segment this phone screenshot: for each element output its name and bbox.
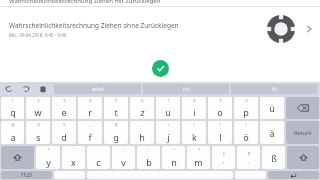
button[interactable]: ich bbox=[143, 84, 229, 94]
button[interactable]: ↵ bbox=[268, 171, 319, 179]
staticText: 8 bbox=[193, 98, 196, 103]
staticText: w bbox=[34, 106, 42, 118]
button[interactable]: what bbox=[54, 84, 141, 94]
staticText: + bbox=[167, 122, 170, 127]
staticText: m bbox=[194, 156, 203, 168]
button[interactable]: _ bbox=[78, 121, 102, 144]
staticText: e bbox=[61, 106, 67, 118]
staticText: Wahrscheinlichkeitsrechnung Ziehen ohne … bbox=[9, 21, 179, 30]
button[interactable]: . bbox=[235, 171, 266, 179]
button[interactable]: Undo bbox=[0, 82, 17, 96]
button[interactable]: 3 bbox=[52, 97, 76, 119]
staticText: z bbox=[140, 106, 145, 118]
button[interactable]: Open bbox=[298, 7, 320, 51]
staticText: th bbox=[272, 86, 277, 93]
button[interactable]: 0 bbox=[234, 97, 258, 119]
staticText: l bbox=[219, 131, 222, 143]
button[interactable]: ä bbox=[260, 121, 284, 144]
staticText: n bbox=[171, 156, 177, 168]
button[interactable]: th bbox=[231, 84, 317, 94]
button[interactable]: ü bbox=[260, 97, 284, 119]
staticText: ß bbox=[271, 152, 277, 164]
staticText: ? . bbox=[247, 151, 250, 165]
button[interactable]: Return bbox=[286, 121, 319, 144]
staticText: x bbox=[71, 156, 76, 168]
button[interactable]: Shift bbox=[287, 146, 319, 169]
staticText: b bbox=[146, 156, 152, 168]
button[interactable]: Backspace bbox=[286, 97, 319, 119]
staticText: d bbox=[61, 131, 67, 143]
button[interactable]: ; bbox=[137, 146, 160, 169]
staticText: q bbox=[10, 106, 16, 118]
button[interactable]: 4 bbox=[78, 97, 102, 119]
button[interactable]: ? . bbox=[237, 146, 260, 169]
button[interactable]: 8 bbox=[182, 97, 206, 119]
button[interactable]: : bbox=[112, 146, 135, 169]
button[interactable]: ) bbox=[208, 121, 232, 144]
button[interactable]: - bbox=[130, 121, 154, 144]
staticText: ä bbox=[269, 127, 275, 139]
staticText: ↵ bbox=[290, 171, 298, 179]
button[interactable]: Shift bbox=[1, 146, 34, 169]
staticText: 5 bbox=[115, 98, 118, 103]
staticText: 0 bbox=[245, 98, 248, 103]
staticText: a bbox=[10, 131, 16, 143]
staticText: ö bbox=[243, 131, 249, 143]
staticText: ?123 bbox=[21, 172, 32, 179]
button[interactable]: Redo bbox=[17, 82, 34, 96]
button[interactable]: ( bbox=[182, 121, 206, 144]
staticText: ich bbox=[183, 86, 190, 93]
button[interactable]: 6 bbox=[130, 97, 154, 119]
button[interactable]: ' bbox=[87, 146, 110, 169]
staticText: & bbox=[115, 122, 118, 127]
staticText: ! bbox=[173, 147, 175, 152]
button[interactable]: / bbox=[234, 121, 258, 144]
staticText: 2 bbox=[37, 98, 40, 103]
button[interactable]: Clipboard bbox=[34, 82, 51, 96]
staticText: h bbox=[139, 131, 145, 143]
button[interactable]: ? bbox=[187, 146, 210, 169]
staticText: " bbox=[73, 147, 75, 152]
button[interactable]: 5 bbox=[104, 97, 128, 119]
button[interactable]: @ bbox=[1, 121, 24, 144]
staticText: / bbox=[245, 122, 247, 127]
staticText: ) bbox=[219, 122, 221, 127]
staticText: ü bbox=[269, 102, 275, 114]
staticText: r bbox=[88, 106, 92, 118]
button[interactable]: * bbox=[36, 146, 60, 169]
staticText: j bbox=[167, 131, 170, 143]
button[interactable]: 1 bbox=[1, 97, 24, 119]
button[interactable]: + bbox=[156, 121, 180, 144]
staticText: y bbox=[46, 156, 51, 168]
button[interactable]: 9 bbox=[208, 97, 232, 119]
button[interactable]: Wahrscheinlichkeitsrechnung Ziehen ohne … bbox=[0, 7, 320, 51]
button[interactable]: Done bbox=[152, 60, 169, 77]
staticText: - bbox=[141, 122, 143, 127]
button[interactable]: ß bbox=[262, 146, 285, 169]
button[interactable]: 7 bbox=[156, 97, 180, 119]
staticText: o bbox=[217, 106, 223, 118]
staticText: 3 bbox=[63, 98, 66, 103]
button[interactable]: " bbox=[62, 146, 85, 169]
staticText: g bbox=[113, 131, 119, 143]
button[interactable]: ! bbox=[162, 146, 185, 169]
button[interactable]: € bbox=[52, 121, 76, 144]
staticText: : bbox=[123, 147, 125, 152]
button[interactable]: ! , bbox=[212, 146, 235, 169]
button[interactable]: ?123 bbox=[1, 171, 52, 179]
button[interactable]: 2 bbox=[26, 97, 50, 119]
staticText: Wahrscheinlichkeitsrechnung Ziehen mit Z… bbox=[9, 0, 161, 5]
button[interactable]: & bbox=[104, 121, 128, 144]
staticText: 6 bbox=[141, 98, 144, 103]
button[interactable]: # bbox=[26, 121, 50, 144]
staticText: _ bbox=[89, 122, 91, 127]
staticText: k bbox=[192, 131, 197, 143]
staticText: ' bbox=[98, 147, 99, 152]
staticText: t bbox=[114, 106, 118, 118]
staticText: 4 bbox=[89, 98, 92, 103]
button[interactable]: , bbox=[54, 171, 85, 179]
staticText: # bbox=[37, 122, 40, 127]
